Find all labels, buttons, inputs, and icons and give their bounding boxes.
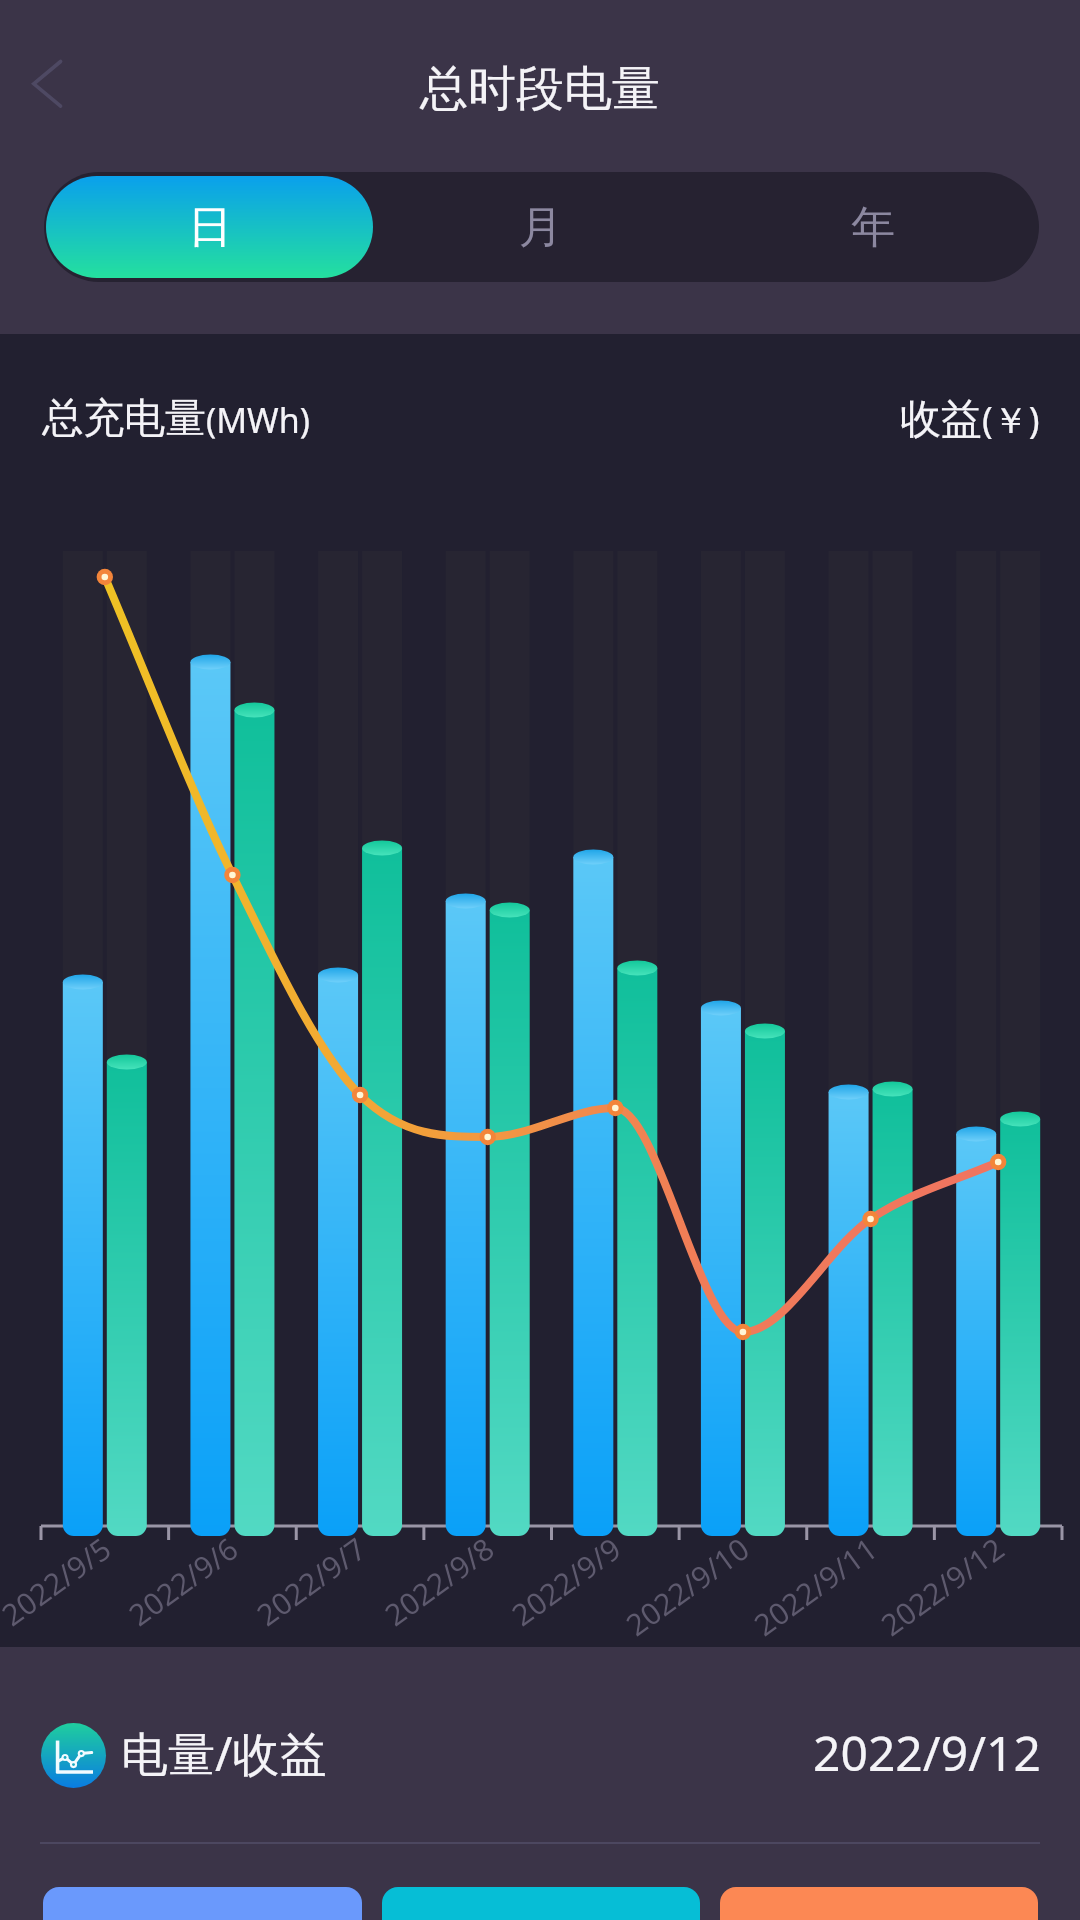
staticText: 日: [188, 200, 232, 255]
staticText: 2022/9/12: [872, 1528, 1012, 1645]
staticText: 2022/9/6: [120, 1528, 246, 1635]
button[interactable]: 年: [709, 176, 1037, 278]
staticText: 2022/9/12: [813, 1720, 1041, 1785]
staticText: 总充电量: [42, 393, 206, 445]
staticText: 2022/9/9: [503, 1528, 629, 1635]
button[interactable]: Export: [43, 1887, 362, 1920]
staticText: 年: [851, 200, 895, 255]
button[interactable]: 日: [46, 176, 373, 278]
button[interactable]: Back: [10, 46, 90, 126]
staticText: 电量/收益: [121, 1721, 327, 1785]
staticText: (￥): [982, 395, 1040, 444]
staticText: 月: [519, 200, 563, 255]
staticText: 2022/9/10: [617, 1528, 757, 1645]
staticText: 2022/9/11: [745, 1528, 885, 1645]
staticText: 2022/9/8: [376, 1528, 502, 1635]
staticText: 2022/9/7: [248, 1528, 374, 1635]
staticText: 收益: [900, 394, 982, 446]
button[interactable]: More: [720, 1887, 1038, 1920]
staticText: (MWh): [206, 397, 310, 443]
staticText: 总时段电量: [420, 59, 660, 119]
staticText: 2022/9/5: [0, 1528, 119, 1635]
button[interactable]: 月: [377, 176, 705, 278]
button[interactable]: Share: [382, 1887, 700, 1920]
button[interactable]: 电量/收益: [41, 1706, 1041, 1804]
